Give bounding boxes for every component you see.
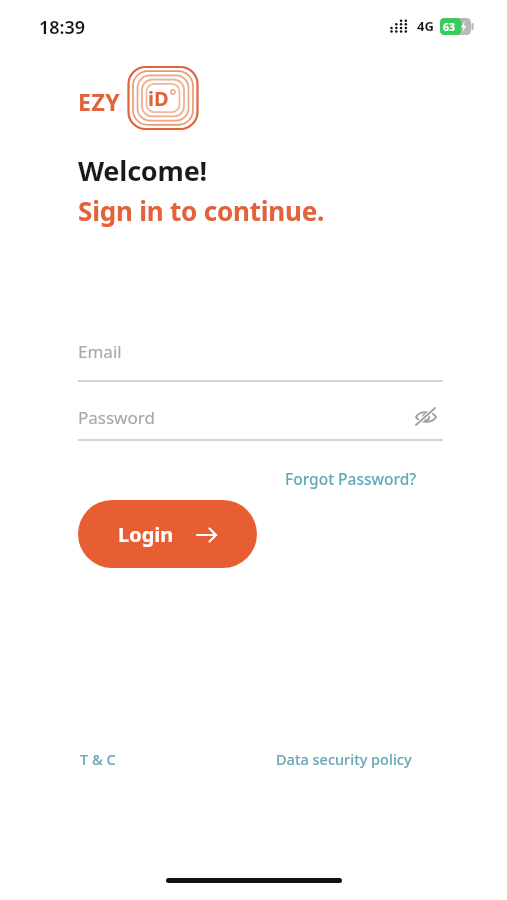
staticText: 63 — [443, 20, 456, 34]
staticText: Password — [78, 406, 155, 429]
staticText: Email — [78, 340, 122, 363]
staticText: Welcome! — [78, 152, 207, 189]
staticText: Forgot Password? — [285, 468, 417, 489]
staticText: T & C — [80, 749, 116, 769]
staticText: 4G — [417, 17, 434, 35]
button[interactable]: Email — [78, 340, 443, 382]
staticText: Data security policy — [276, 749, 412, 769]
staticText: iD — [148, 85, 169, 112]
staticText: EZY — [78, 86, 121, 117]
button[interactable]: Login — [78, 500, 257, 568]
staticText: 18:39 — [39, 15, 86, 40]
button[interactable]: T & C — [78, 746, 118, 772]
button[interactable]: Forgot Password? — [283, 466, 419, 491]
staticText: Login — [118, 521, 174, 548]
button[interactable]: Data security policy — [274, 746, 414, 772]
button[interactable]: Show password — [409, 400, 443, 434]
staticText: Sign in to continue. — [78, 193, 325, 228]
button[interactable]: Password — [78, 400, 443, 434]
